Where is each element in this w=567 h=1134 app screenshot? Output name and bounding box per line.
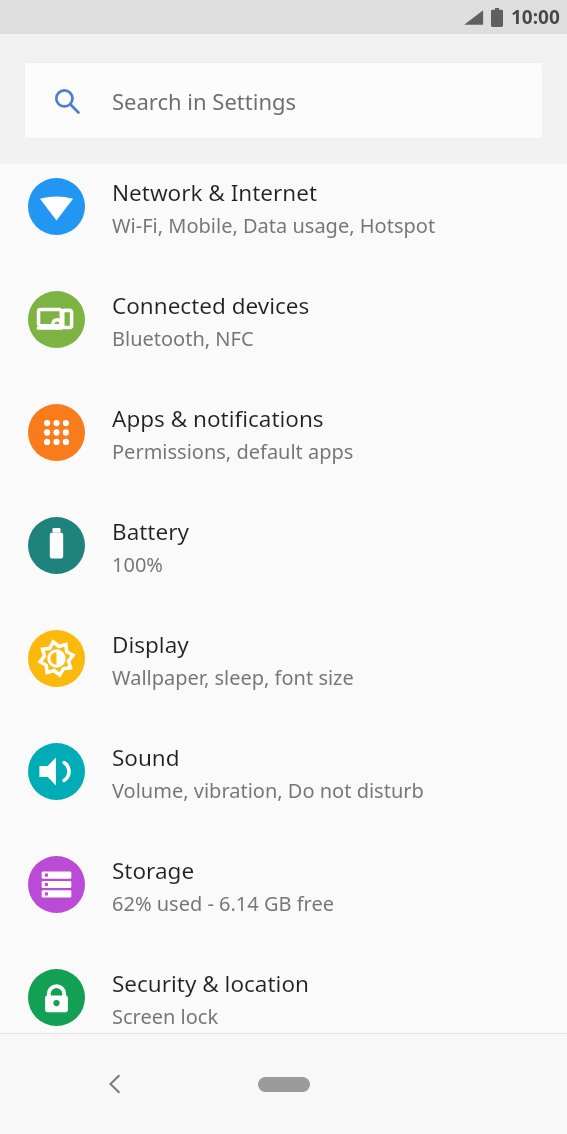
staticText: Connected devices — [112, 290, 310, 321]
staticText: Wallpaper, sleep, font size — [112, 664, 354, 691]
staticText: 62% used - 6.14 GB free — [112, 890, 334, 917]
staticText: Security & location — [112, 968, 309, 999]
staticText: 10:00 — [511, 4, 560, 30]
button[interactable]: Connected devices — [0, 277, 567, 390]
button[interactable]: Home — [246, 1064, 322, 1104]
button[interactable]: Storage — [0, 842, 567, 955]
staticText: Wi-Fi, Mobile, Data usage, Hotspot — [112, 212, 436, 239]
staticText: Search in Settings — [112, 86, 297, 116]
button[interactable]: Back — [92, 1060, 140, 1108]
staticText: Volume, vibration, Do not disturb — [112, 777, 424, 804]
staticText: Display — [112, 629, 189, 660]
staticText: Sound — [112, 742, 180, 773]
staticText: 100% — [112, 551, 163, 578]
staticText: Permissions, default apps — [112, 438, 354, 465]
staticText: Apps & notifications — [112, 403, 324, 434]
button[interactable]: Battery — [0, 503, 567, 616]
button[interactable]: Security & location — [0, 955, 567, 1027]
button[interactable]: Display — [0, 616, 567, 729]
button[interactable]: Search in Settings — [24, 62, 543, 139]
button[interactable]: Apps & notifications — [0, 390, 567, 503]
staticText: Network & Internet — [112, 177, 318, 208]
staticText: Screen lock — [112, 1003, 219, 1027]
staticText: Storage — [112, 855, 195, 886]
staticText: Battery — [112, 516, 189, 547]
button[interactable]: Sound — [0, 729, 567, 842]
staticText: Bluetooth, NFC — [112, 325, 254, 352]
button[interactable]: Network & Internet — [0, 164, 567, 277]
